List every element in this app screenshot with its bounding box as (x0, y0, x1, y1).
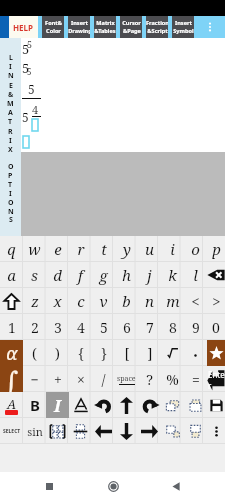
button[interactable]: 1 (0, 314, 23, 340)
button[interactable]: + (46, 366, 69, 392)
button[interactable]: space (115, 366, 138, 392)
button[interactable]: Backspace (207, 262, 225, 288)
button[interactable]: z (23, 288, 46, 314)
button[interactable]: HELP (9, 16, 38, 38)
button[interactable]: 8 (161, 314, 184, 340)
button[interactable]: 9 (184, 314, 207, 340)
button[interactable]: ] (138, 340, 161, 366)
button[interactable]: 2 (23, 314, 46, 340)
button[interactable]: sin (23, 418, 46, 444)
button[interactable]: Font& (42, 16, 64, 38)
button[interactable]: Home (100, 473, 126, 499)
button[interactable]: 5 (21, 38, 225, 152)
button[interactable]: o (184, 236, 207, 262)
button[interactable]: < (184, 288, 207, 314)
button[interactable]: Insert (68, 16, 90, 38)
staticText: M (7, 99, 14, 109)
button[interactable]: m (161, 288, 184, 314)
button[interactable]: Matrix (94, 16, 116, 38)
button[interactable]: = (184, 366, 207, 392)
button[interactable]: Redo (138, 392, 161, 418)
button[interactable]: 0 (207, 314, 225, 340)
button[interactable]: Cursor (120, 16, 142, 38)
staticText: S (9, 215, 13, 225)
button[interactable]: More options (194, 16, 225, 38)
button[interactable]: ∫ (0, 366, 23, 392)
button[interactable]: − (23, 366, 46, 392)
button[interactable]: Matrix (46, 418, 69, 444)
button[interactable]: > (207, 288, 225, 314)
staticText: ∫ (4, 366, 19, 392)
button[interactable]: Back (163, 473, 189, 499)
button[interactable]: α (0, 340, 23, 366)
staticText: HELP (13, 22, 34, 33)
button[interactable]: ) (46, 340, 69, 366)
button[interactable]: Square root (161, 340, 184, 366)
button[interactable]: I (46, 392, 69, 418)
button[interactable]: k (161, 262, 184, 288)
button[interactable]: y (115, 236, 138, 262)
button[interactable]: Undo (92, 392, 115, 418)
button[interactable]: p (207, 236, 225, 262)
button[interactable]: l (184, 262, 207, 288)
button[interactable]: × (69, 366, 92, 392)
button[interactable]: } (92, 340, 115, 366)
button[interactable]: Up (115, 392, 138, 418)
button[interactable]: 6 (115, 314, 138, 340)
button[interactable]: h (115, 262, 138, 288)
staticText: k (168, 265, 177, 285)
button[interactable]: Fraction (69, 418, 92, 444)
button[interactable]: 3 (46, 314, 69, 340)
button[interactable]: 5 (92, 314, 115, 340)
button[interactable]: j (138, 262, 161, 288)
button[interactable]: Text colour (0, 392, 23, 418)
button[interactable]: 4 (69, 314, 92, 340)
button[interactable]: e (46, 236, 69, 262)
button[interactable]: c (69, 288, 92, 314)
button[interactable]: Font (69, 392, 92, 418)
button[interactable]: r (69, 236, 92, 262)
button[interactable]: v (92, 288, 115, 314)
button[interactable]: Copy (161, 392, 184, 418)
button[interactable]: Shift (0, 288, 23, 314)
button[interactable]: u (138, 236, 161, 262)
button[interactable]: f (69, 262, 92, 288)
button[interactable]: % (161, 366, 184, 392)
button[interactable]: g (92, 262, 115, 288)
button[interactable]: b (115, 288, 138, 314)
button[interactable]: Fraction (146, 16, 168, 38)
button[interactable]: Favourite (207, 340, 225, 366)
button[interactable]: t (92, 236, 115, 262)
button[interactable]: Insert (172, 16, 194, 38)
button[interactable]: Recent apps (36, 473, 62, 499)
button[interactable]: Superscript (184, 418, 207, 444)
button[interactable]: More (207, 418, 225, 444)
button[interactable]: Save (207, 392, 225, 418)
button[interactable]: Subscript (161, 418, 184, 444)
button[interactable]: Down (115, 418, 138, 444)
button[interactable]: d (46, 262, 69, 288)
button[interactable]: [ (115, 340, 138, 366)
button[interactable]: 7 (138, 314, 161, 340)
button[interactable]: { (69, 340, 92, 366)
button[interactable]: B (23, 392, 46, 418)
button[interactable]: Left (92, 418, 115, 444)
staticText: P (8, 171, 13, 181)
button[interactable]: s (23, 262, 46, 288)
button[interactable]: Right (138, 418, 161, 444)
button[interactable]: a (0, 262, 23, 288)
button[interactable]: Paste (184, 392, 207, 418)
button[interactable]: Enter (207, 366, 225, 392)
button[interactable]: Dot (184, 340, 207, 366)
button[interactable]: / (92, 366, 115, 392)
button[interactable]: SELECT (0, 418, 23, 444)
button[interactable]: L (0, 38, 21, 236)
button[interactable]: ( (23, 340, 46, 366)
button[interactable]: n (138, 288, 161, 314)
button[interactable]: q (0, 236, 23, 262)
button[interactable]: ? (138, 366, 161, 392)
button[interactable]: w (23, 236, 46, 262)
button[interactable]: i (161, 236, 184, 262)
button[interactable]: x (46, 288, 69, 314)
